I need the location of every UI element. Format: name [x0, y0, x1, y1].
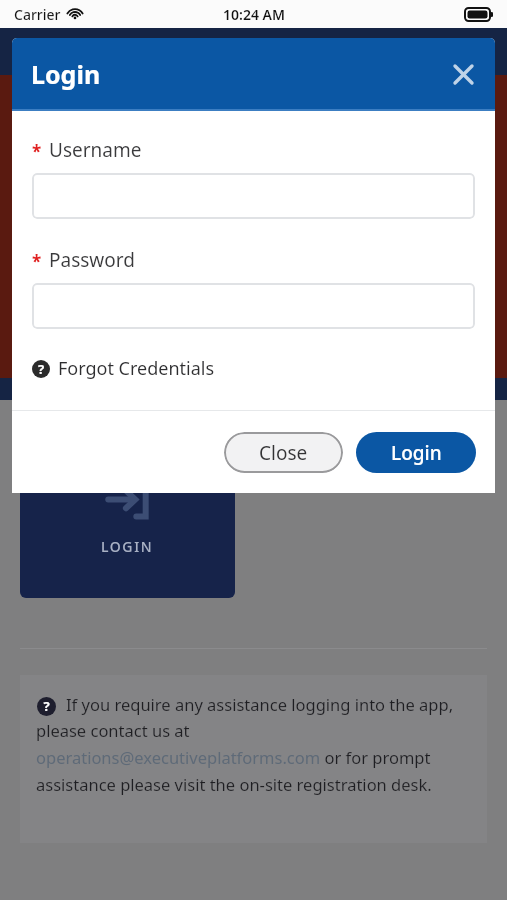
button[interactable]: LOGIN — [20, 432, 235, 598]
button[interactable]: Login — [356, 432, 476, 473]
button[interactable]: ? — [32, 353, 215, 384]
button[interactable] — [32, 173, 475, 219]
staticText: * — [32, 140, 42, 163]
staticText: * — [32, 250, 42, 273]
staticText: ? — [38, 360, 45, 378]
staticText: LOGIN — [101, 537, 154, 556]
staticText: ? — [42, 697, 51, 715]
staticText: If you require any assistance logging in… — [36, 693, 471, 796]
staticText: Username — [49, 137, 142, 163]
staticText: Password — [49, 247, 135, 273]
staticText: Login — [31, 57, 101, 91]
button[interactable]: Close — [224, 432, 343, 473]
staticText: 10:24 AM — [223, 5, 285, 24]
button[interactable]: Close — [445, 56, 481, 92]
staticText: Login — [391, 440, 442, 466]
button[interactable] — [32, 283, 475, 329]
staticText: Carrier — [14, 5, 61, 24]
staticText: Forgot Credentials — [58, 356, 215, 381]
staticText: Close — [259, 440, 308, 466]
